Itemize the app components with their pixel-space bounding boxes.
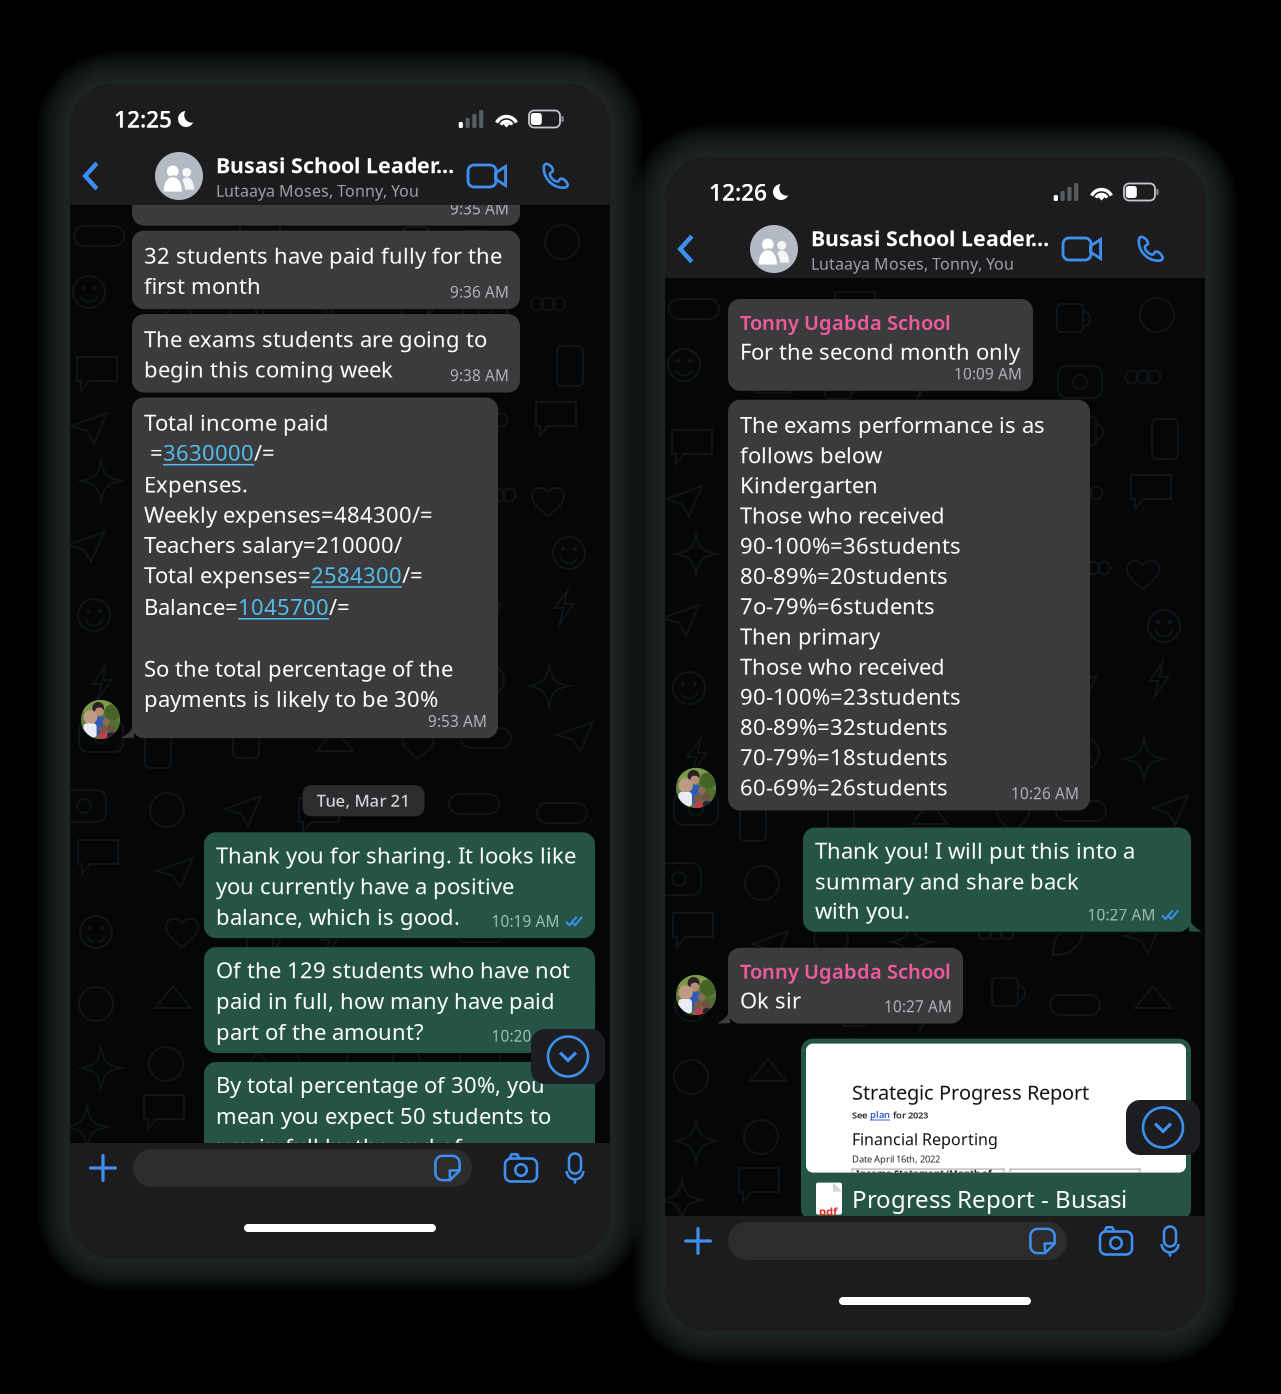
staticText: mean you expect 50 students to [216,1101,551,1130]
staticText: paid in full, how many have paid [216,986,555,1015]
staticText: /= [329,592,350,621]
button[interactable]: Voice call [534,149,578,203]
staticText: 9:53 AM [428,711,487,731]
staticText: Income Statement (Month of March) [856,1167,992,1191]
staticText: Total expenses= [144,560,311,589]
staticText: Strategic Progress Report [852,1079,1089,1105]
staticText: /= [402,560,423,589]
staticText: So the total percentage of the [144,654,453,683]
button[interactable]: Scroll to bottom [1126,1100,1200,1155]
staticText: 9:38 AM [450,365,509,385]
staticText: For the second month only [740,337,1020,366]
staticText: 10:26 AM [1011,783,1079,804]
staticText [144,127,150,156]
staticText: 70-79%=18students [740,742,948,771]
staticText: By total percentage of 30%, you [216,1070,545,1099]
staticText: /= [254,438,275,467]
staticText: 12:25 [114,104,172,134]
staticText: 80-89%=32students [740,712,948,741]
button[interactable]: Video call [465,149,509,203]
staticText: Thank you! I will put this into a [815,836,1135,865]
staticText: The exams performance is as [740,410,1045,439]
button[interactable]: Voice message [1156,1220,1184,1262]
staticText: 9:35 AM [450,198,509,219]
staticText: 90-100%=23students [740,682,961,711]
staticText: 3630000 [163,438,254,467]
staticText: = [144,438,163,467]
staticText: pdf [819,1204,837,1219]
staticText: Date April 16th, 2022 [852,1153,940,1165]
staticText: plan [870,1108,890,1120]
staticText: you currently have a positive [216,871,514,900]
staticText: Kindergarten [740,470,878,499]
staticText: Financial Reporting [852,1128,998,1150]
button[interactable]: Voice message [561,1147,589,1189]
staticText: first month [144,271,261,300]
button[interactable]: Busasi School Leader… [704,224,1060,274]
staticText: Lutaaya Moses, Tonny, You [811,253,1014,274]
staticText: Lutaaya Moses, Tonny, You [216,180,419,201]
button[interactable]: Back [73,149,109,203]
staticText: Progress Report - Busasi [852,1183,1127,1215]
staticText: Busasi School Leader… [216,151,454,179]
staticText: for 2023 [893,1109,928,1121]
staticText: The exams students are going to [144,324,487,353]
staticText: Thank you for sharing. It looks like [216,840,576,869]
staticText: Those who received [740,500,945,530]
staticText: Teachers salary=210000/ [144,530,402,559]
button[interactable]: Back [668,222,704,276]
staticText: 1045700 [238,592,329,621]
button[interactable]: Camera [501,1147,541,1189]
staticText: part of the amount? [216,1017,424,1046]
button[interactable]: Type a message [728,1222,1067,1260]
button[interactable]: Type a message [133,1149,472,1187]
staticText: Expenses. [144,469,248,499]
staticText: 12:26 [709,177,767,207]
staticText: 60-69%=26students [740,772,948,802]
staticText: Ok sir [740,985,801,1015]
button[interactable]: Scroll to bottom [531,1029,605,1084]
staticText: summary and share back with you. [815,866,1079,925]
staticText: 10:27 AM [884,996,952,1017]
staticText: Of the 129 students who have not [216,955,570,984]
button[interactable]: Busasi School Leader… [109,151,465,201]
staticText: payments is likely to be 30% [144,684,438,713]
staticText: 80-89%=20students [740,561,948,590]
staticText: Tue, Mar 21 [316,789,410,811]
staticText: Weekly expenses=484300/= [144,500,433,529]
button[interactable]: Progress Report - Busasi PDF [801,1039,1191,1221]
staticText: 90-100%=36students [740,531,961,560]
staticText: balance, which is good. [216,902,460,931]
button[interactable]: Attach [84,1147,122,1189]
staticText: Tonny Ugabda School [740,958,951,984]
staticText: Those who received [740,651,945,681]
staticText [144,187,150,217]
staticText: begin this coming week [144,354,393,383]
staticText: Busasi School Leader… [811,224,1049,252]
staticText: 10:21 AM [491,1170,559,1190]
staticText: Tonny Ugabda School [740,309,951,336]
staticText: 2584300 [311,560,402,589]
staticText: 7o-79%=6students [740,591,935,620]
staticText: 10:09 AM [954,363,1022,384]
button[interactable]: Attach [679,1220,717,1262]
button[interactable]: Camera [1096,1220,1136,1262]
staticText: 9:36 AM [450,282,509,302]
button[interactable]: Voice call [1129,222,1173,276]
staticText: 10:19 AM [491,911,559,931]
staticText: Then primary [740,621,880,650]
button[interactable]: Video call [1060,222,1104,276]
staticText: See [852,1109,867,1121]
staticText: 10:27 AM [1087,904,1155,925]
staticText: 10:20 AM [491,1026,559,1046]
staticText: Total income paid [144,407,329,437]
staticText: 32 students have paid fully for the [144,241,502,270]
staticText: Balance= [144,592,238,621]
staticText: follows below [740,440,882,469]
staticText: pay in full by the end of the term? [216,1132,462,1190]
